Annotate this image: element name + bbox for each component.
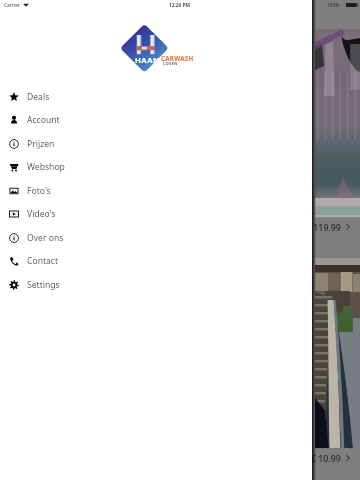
staticText: Deals bbox=[27, 91, 50, 103]
button[interactable]: Webshop bbox=[0, 155, 312, 178]
staticText: Prijzen bbox=[27, 138, 55, 150]
button[interactable]: Foto's bbox=[0, 179, 312, 202]
staticText: Settings bbox=[27, 279, 60, 291]
staticText: Foto's bbox=[27, 185, 51, 197]
button[interactable]: Deals bbox=[0, 85, 312, 108]
button[interactable]: Video's bbox=[0, 202, 312, 225]
staticText: € 119.99 bbox=[306, 222, 341, 232]
button[interactable]: Prijzen bbox=[0, 132, 312, 155]
staticText: Account bbox=[27, 114, 60, 126]
staticText: 12:26 PM bbox=[169, 2, 191, 9]
button[interactable]: Settings bbox=[0, 273, 312, 296]
staticText: LOVEN bbox=[163, 61, 178, 66]
staticText: Video's bbox=[27, 208, 56, 220]
button[interactable]: Account bbox=[0, 108, 312, 131]
button[interactable]: € 119.99 bbox=[0, 222, 360, 232]
staticText: Contact bbox=[27, 255, 59, 267]
staticText: € 10.99 bbox=[311, 453, 341, 463]
staticText: HAANS bbox=[135, 55, 165, 65]
button[interactable]: Over ons bbox=[0, 226, 312, 249]
staticText: Webshop bbox=[27, 161, 65, 173]
button[interactable]: € 10.99 bbox=[0, 453, 360, 463]
button[interactable]: Contact bbox=[0, 249, 312, 272]
staticText: 100% bbox=[327, 2, 340, 9]
staticText: CARWASH bbox=[161, 54, 194, 62]
staticText: Over ons bbox=[27, 232, 64, 244]
staticText: Carrier bbox=[4, 2, 20, 9]
